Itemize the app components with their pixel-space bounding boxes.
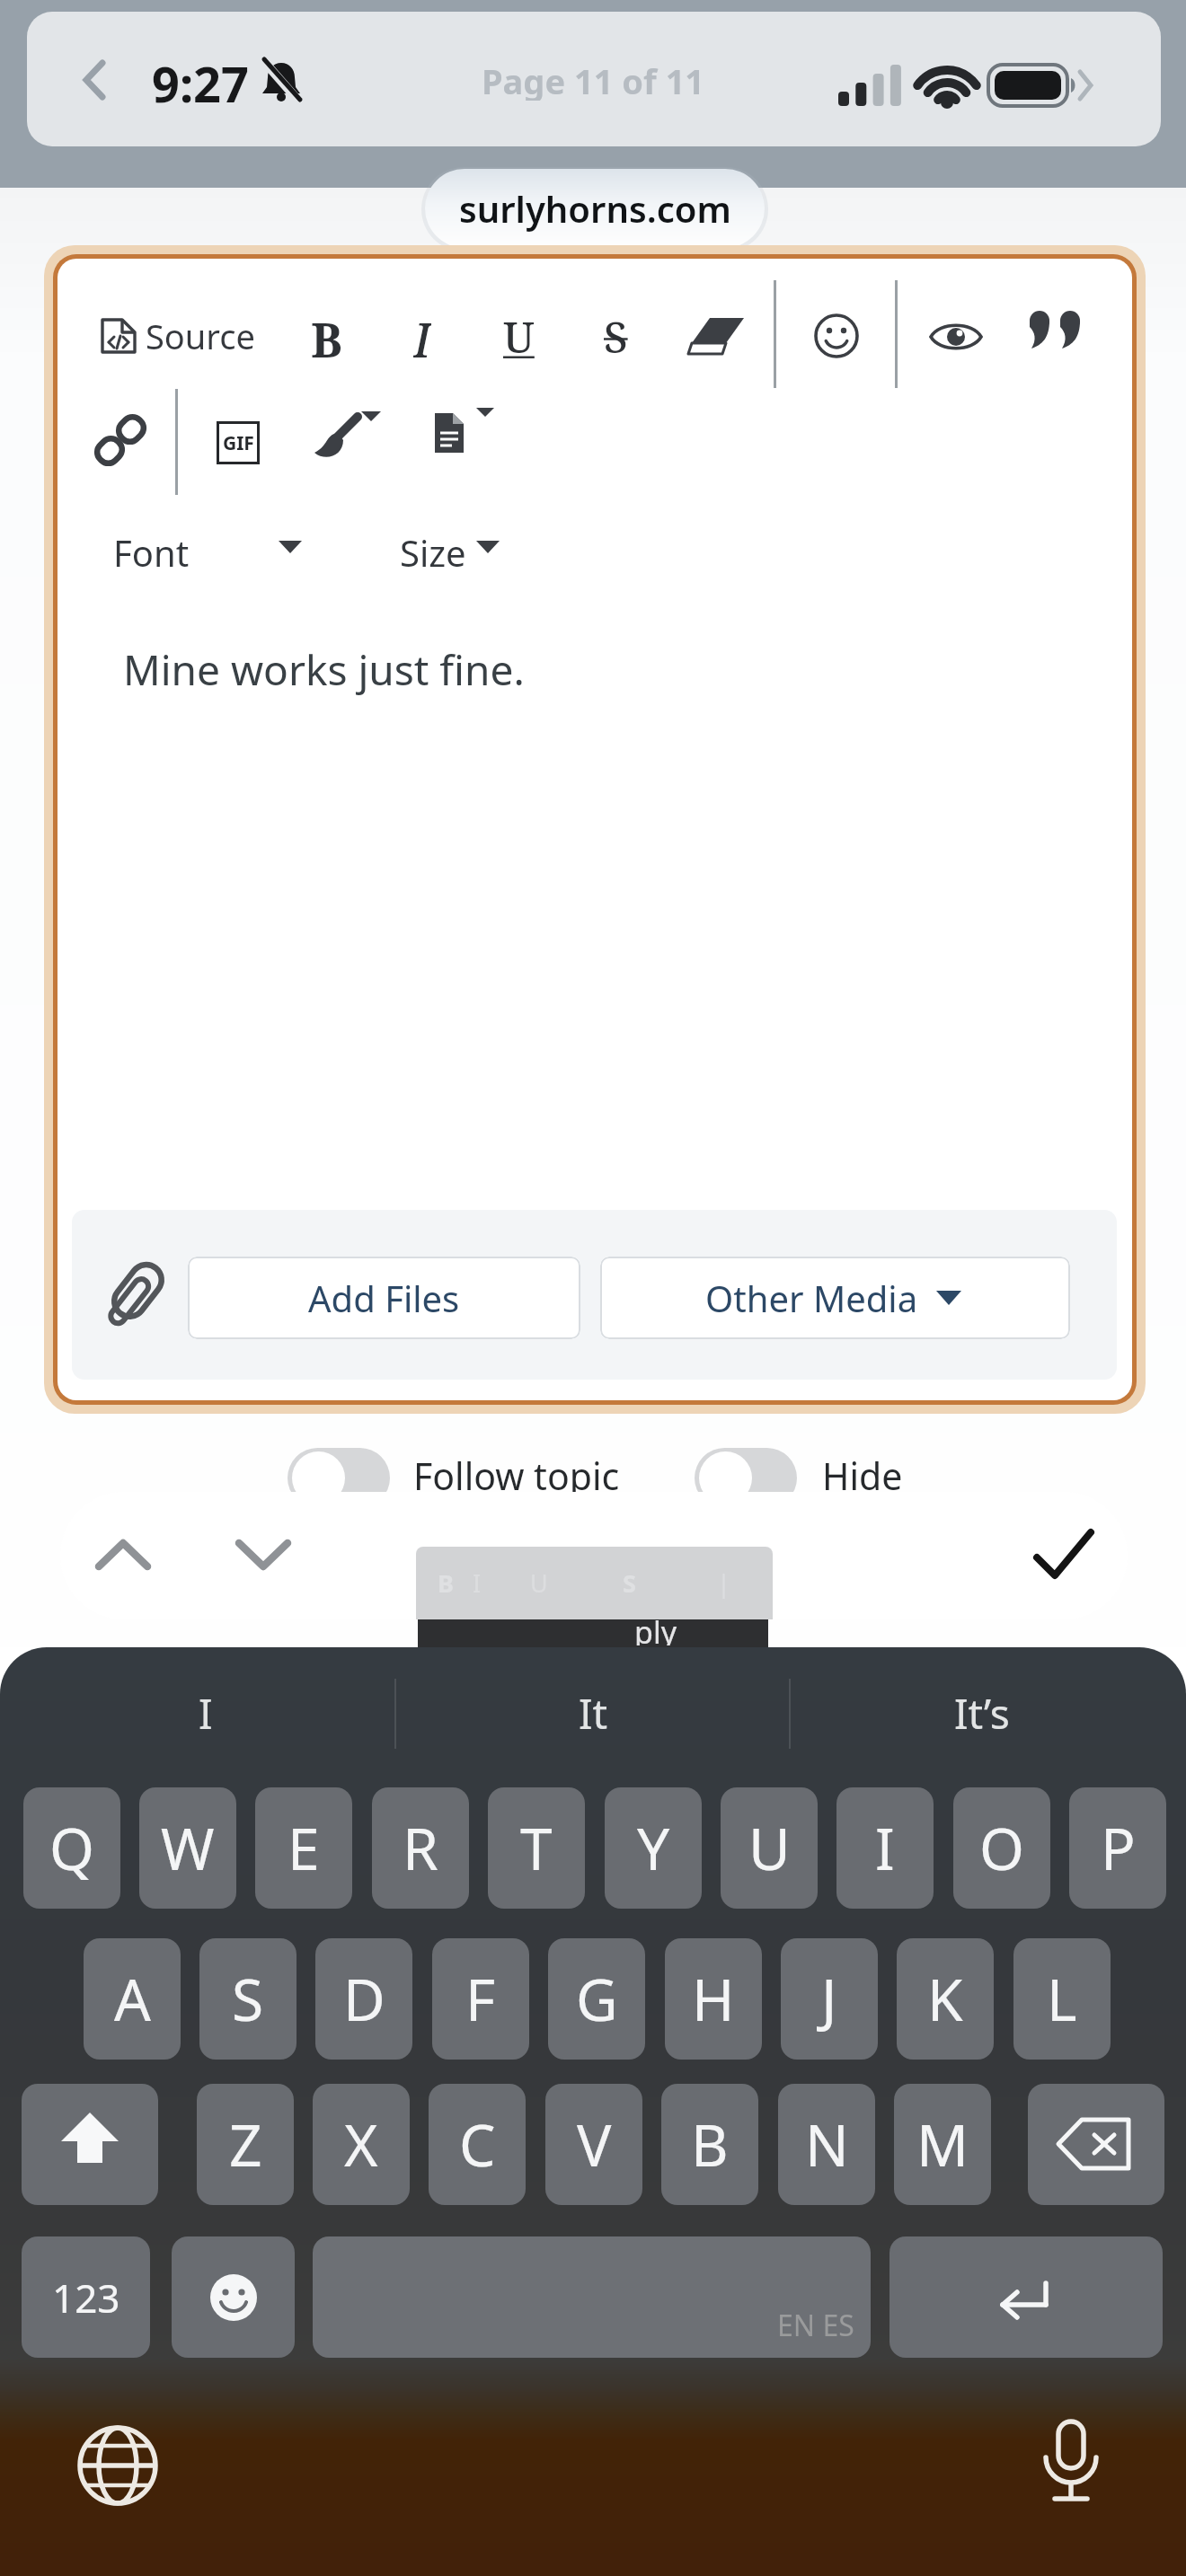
button[interactable]: E [255,1787,352,1909]
staticText: Q [49,1809,94,1887]
button[interactable]: S [199,1938,296,2060]
staticText: ply [634,1611,677,1645]
staticText: L [1047,1960,1077,2038]
button[interactable]: D [315,1938,412,2060]
staticText: Font [113,528,190,573]
button[interactable] [476,541,500,555]
button[interactable]: I [836,1787,934,1909]
button[interactable]: V [545,2084,642,2205]
button[interactable] [279,541,302,555]
button[interactable] [1028,2084,1164,2205]
button[interactable]: R [372,1787,469,1909]
button[interactable]: B [661,2084,758,2205]
button[interactable] [929,316,983,357]
button[interactable]: N [778,2084,875,2205]
staticText: I [473,1566,482,1600]
button[interactable]: Size [395,528,471,573]
button[interactable] [1028,309,1085,363]
button[interactable] [95,1538,151,1572]
button[interactable]: L [1013,1938,1111,2060]
staticText: GIF [223,430,254,456]
button[interactable] [172,2236,295,2358]
staticText: A [114,1960,151,2038]
button[interactable] [889,2236,1163,2358]
button[interactable]: K [897,1938,994,2060]
button[interactable] [93,413,147,467]
button[interactable] [422,406,494,471]
staticText: N [805,2105,849,2183]
button[interactable]: F [432,1938,529,2060]
button[interactable]: U [721,1787,818,1909]
staticText: S [604,307,628,365]
button[interactable]: Font [110,528,192,573]
button[interactable]: It [503,1683,683,1742]
button[interactable]: P [1069,1787,1166,1909]
button[interactable] [695,1448,797,1508]
staticText: S [623,1566,636,1600]
button[interactable]: It’s [892,1683,1072,1742]
button[interactable]: X [313,2084,410,2205]
button[interactable]: U [491,307,546,365]
button[interactable]: H [665,1938,762,2060]
button[interactable] [1035,2420,1107,2510]
staticText: B [691,2105,729,2183]
button[interactable] [288,1448,390,1508]
button[interactable]: I [116,1683,296,1742]
staticText: P [1101,1809,1136,1887]
button[interactable]: Y [605,1787,702,1909]
staticText: Hide [822,1451,903,1501]
staticText: E [288,1809,320,1887]
button[interactable]: W [139,1787,236,1909]
button[interactable]: J [781,1938,878,2060]
staticText: I [199,1685,213,1742]
staticText: K [927,1960,963,2038]
button[interactable] [1031,1525,1096,1583]
staticText: W [161,1809,215,1887]
button[interactable]: S [589,307,642,365]
button[interactable]: Q [23,1787,120,1909]
staticText: surlyhorns.com [459,184,731,233]
staticText: B [311,307,342,365]
button[interactable]: 123 [22,2236,150,2358]
staticText: Add Files [308,1274,460,1322]
button[interactable]: GIF [217,421,260,464]
button[interactable]: G [548,1938,645,2060]
button[interactable] [75,2423,160,2508]
button[interactable] [99,313,138,359]
button[interactable]: Other Media [600,1257,1070,1339]
button[interactable] [235,1538,291,1572]
staticText: U [503,307,535,365]
staticText: Y [637,1809,670,1887]
button[interactable]: Add Files [188,1257,580,1339]
staticText: Mine works just fine. [123,641,525,698]
button[interactable]: Source [142,313,259,359]
button[interactable] [813,313,860,359]
button[interactable] [683,311,748,361]
button[interactable]: EN ES [313,2236,871,2358]
staticText: Z [229,2105,262,2183]
staticText: I [875,1809,895,1887]
button[interactable] [104,1256,167,1331]
staticText: Size [400,528,466,573]
button[interactable] [22,2084,158,2205]
button[interactable] [425,169,765,248]
button[interactable]: O [953,1787,1050,1909]
staticText: 9:27 [152,50,249,108]
staticText: It’s [954,1685,1010,1742]
button[interactable]: C [429,2084,526,2205]
staticText: C [459,2105,496,2183]
button[interactable]: I [397,307,447,365]
button[interactable] [309,406,381,471]
button[interactable]: M [894,2084,991,2205]
staticText: X [344,2105,378,2183]
button[interactable]: A [84,1938,181,2060]
staticText: Follow topic [413,1451,620,1501]
staticText: U [530,1566,548,1600]
staticText: U [748,1809,791,1887]
staticText: I [413,307,431,365]
button[interactable]: T [488,1787,585,1909]
button[interactable]: B [296,307,356,365]
staticText: S [232,1960,264,2038]
button[interactable]: Z [197,2084,294,2205]
